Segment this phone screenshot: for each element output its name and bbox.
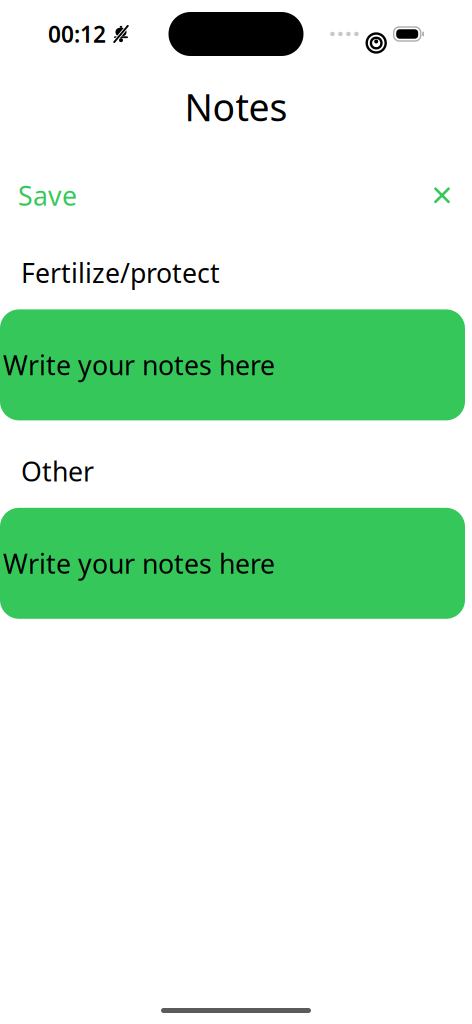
staticText: Fertilize/protect	[21, 255, 220, 290]
button[interactable]: Close	[429, 178, 472, 212]
button[interactable]: Write your notes here	[0, 508, 465, 619]
staticText: Write your notes here	[3, 546, 275, 581]
button[interactable]: Write your notes here	[0, 309, 465, 420]
button[interactable]: Save	[0, 172, 77, 219]
staticText: 00:12	[48, 19, 106, 49]
staticText: Notes	[184, 82, 287, 132]
staticText: Write your notes here	[3, 347, 275, 383]
staticText: Save	[18, 178, 77, 213]
staticText: Other	[21, 453, 94, 489]
